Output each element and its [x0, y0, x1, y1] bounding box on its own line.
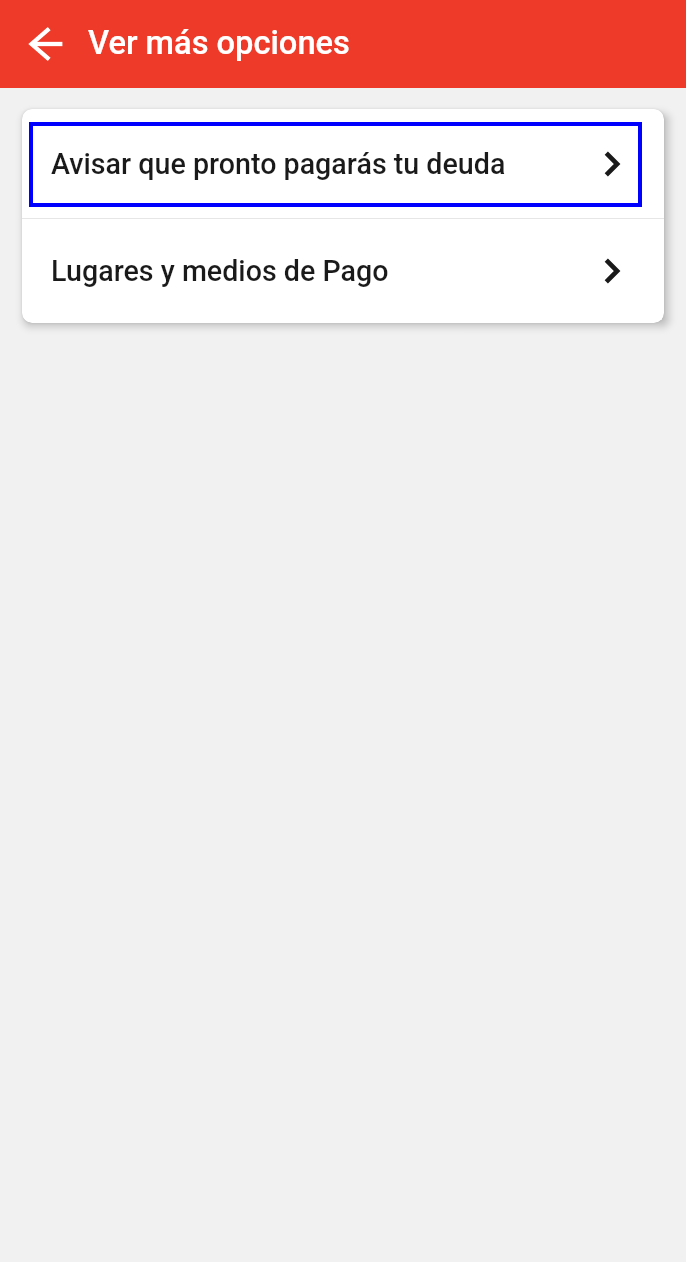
button[interactable]: Avisar que pronto pagarás tu deuda: [22, 109, 664, 218]
button[interactable]: Back: [18, 16, 74, 72]
button[interactable]: Lugares y medios de Pago: [22, 219, 664, 323]
staticText: Avisar que pronto pagarás tu deuda: [51, 147, 506, 181]
staticText: Lugares y medios de Pago: [51, 254, 389, 288]
staticText: Ver más opciones: [88, 24, 350, 62]
